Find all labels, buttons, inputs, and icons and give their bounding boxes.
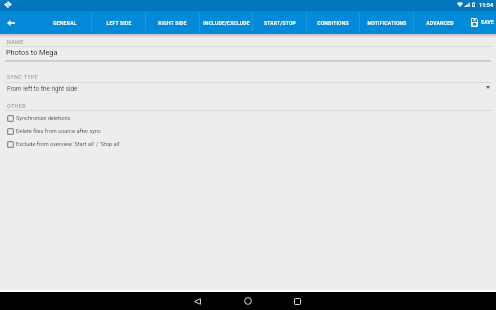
button[interactable]: Save — [467, 11, 496, 34]
staticText: Photos to Mega — [6, 48, 58, 57]
staticText: INCLUDE/EXCLUDE — [203, 20, 250, 26]
button[interactable]: RIGHT SIDE — [145, 11, 199, 34]
staticText: LEFT SIDE — [106, 20, 132, 26]
staticText: NAME — [7, 39, 24, 45]
button[interactable]: Delete files from source after sync — [0, 125, 496, 138]
button[interactable]: INCLUDE/EXCLUDE — [199, 11, 253, 34]
button[interactable]: Recents — [272, 292, 322, 310]
staticText: NOTIFICATIONS — [367, 20, 407, 26]
button[interactable]: NOTIFICATIONS — [360, 11, 414, 34]
button[interactable]: From left to the right side — [0, 84, 496, 96]
button[interactable]: Back — [0, 11, 38, 34]
staticText: 11:54 — [479, 2, 494, 9]
button[interactable]: Home — [223, 292, 273, 310]
staticText: OTHER — [7, 103, 26, 109]
staticText: SYNC TYPE — [7, 74, 39, 80]
staticText: From left to the right side — [7, 85, 78, 92]
staticText: Exclude from overview 'Start all' / 'Sto… — [16, 141, 121, 148]
button[interactable]: CONDITIONS — [306, 11, 360, 34]
button[interactable]: LEFT SIDE — [92, 11, 146, 34]
staticText: Delete files from source after sync — [16, 128, 102, 135]
button[interactable]: Exclude from overview 'Start all' / 'Sto… — [0, 138, 496, 151]
button[interactable]: GENERAL — [38, 11, 92, 34]
staticText: Synchronize deletions — [16, 115, 71, 122]
button[interactable]: Synchronize deletions — [0, 112, 496, 125]
button[interactable]: Back — [172, 292, 222, 310]
button[interactable]: ADVANCED — [413, 11, 467, 34]
staticText: CONDITIONS — [317, 20, 349, 26]
staticText: ADVANCED — [426, 20, 454, 26]
staticText: START/STOP — [264, 20, 296, 26]
staticText: RIGHT SIDE — [158, 20, 187, 26]
button[interactable]: START/STOP — [253, 11, 307, 34]
staticText: SAVE — [481, 19, 495, 25]
staticText: GENERAL — [53, 20, 77, 26]
